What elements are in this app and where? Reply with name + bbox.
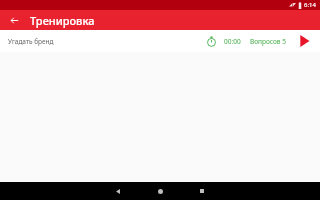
staticText: 00:00	[224, 37, 241, 46]
button[interactable]: Home	[147, 182, 173, 200]
staticText: Тренировка	[30, 13, 95, 28]
button[interactable]: Угадать бренд	[0, 30, 320, 52]
staticText: 6:14	[304, 1, 316, 9]
staticText: Вопросов 5	[250, 37, 286, 46]
button[interactable]: Back	[105, 182, 131, 200]
button[interactable]: Recent apps	[189, 182, 215, 200]
button[interactable]: Back	[6, 12, 23, 29]
other: Timer	[205, 35, 218, 48]
button[interactable]: Start	[296, 33, 312, 49]
staticText: Угадать бренд	[8, 37, 54, 46]
